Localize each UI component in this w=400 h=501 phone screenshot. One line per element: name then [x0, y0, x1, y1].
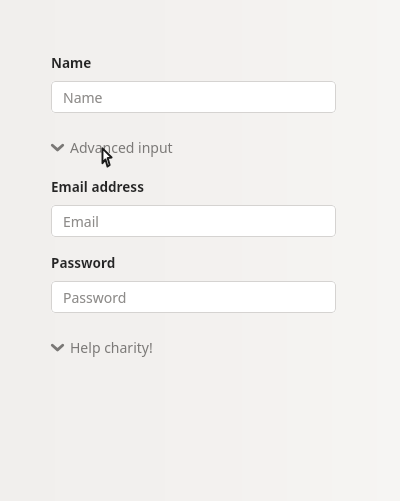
other: Expand Advanced input	[51, 142, 64, 153]
staticText: Advanced input	[70, 138, 173, 157]
staticText: Email address	[51, 178, 144, 196]
staticText: Help charity!	[70, 338, 153, 357]
button[interactable]: Name	[51, 81, 336, 113]
staticText: Email	[63, 212, 99, 231]
button[interactable]: Password	[51, 281, 336, 313]
staticText: Password	[51, 254, 116, 272]
other: Expand Help charity!	[51, 342, 64, 353]
staticText: Password	[63, 288, 127, 307]
button[interactable]: Expand Advanced input	[51, 136, 336, 158]
button[interactable]: Email	[51, 205, 336, 237]
button[interactable]: Expand Help charity!	[51, 336, 336, 358]
staticText: Name	[63, 88, 103, 107]
staticText: Name	[51, 54, 92, 72]
